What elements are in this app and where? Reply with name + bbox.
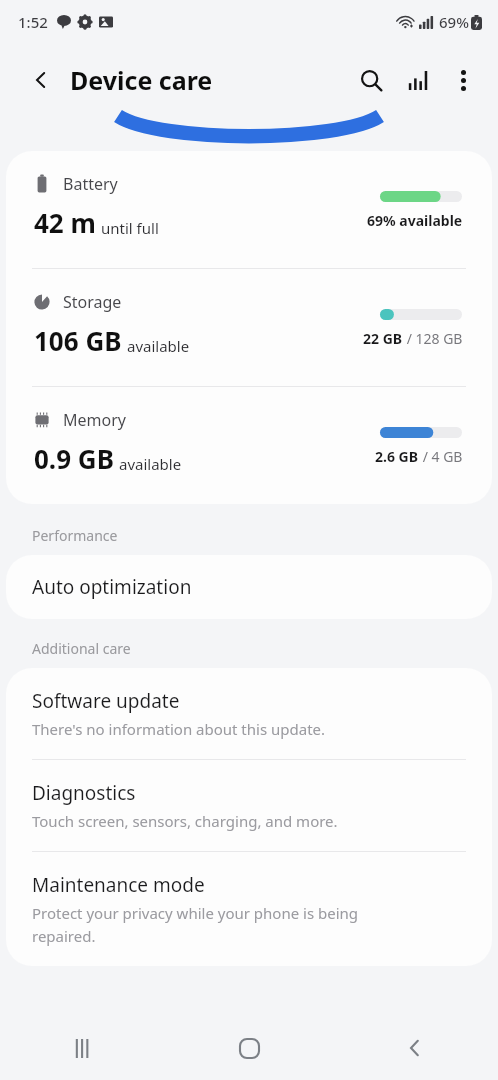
staticText: 106 GB (34, 323, 122, 358)
staticText: Diagnostics (32, 780, 136, 806)
staticText: / 4 GB (419, 447, 463, 466)
staticText: 0.9 GB (34, 441, 114, 476)
staticText: Auto optimization (32, 574, 192, 600)
staticText: Storage (63, 291, 122, 313)
button[interactable]: Software update (6, 668, 492, 759)
staticText: There's no information about this update… (32, 719, 326, 739)
button[interactable]: Home (166, 1016, 332, 1080)
button[interactable]: Storage (6, 269, 492, 386)
staticText: 1:52 (18, 12, 48, 32)
button[interactable]: More options (442, 59, 484, 101)
staticText: Performance (32, 526, 118, 545)
button[interactable]: Auto optimization (6, 555, 492, 619)
staticText: 22 GB (363, 329, 403, 348)
staticText: Memory (63, 409, 126, 431)
button[interactable]: Battery (6, 151, 492, 268)
staticText: Device care (70, 63, 213, 97)
staticText: / 128 GB (403, 329, 463, 348)
button[interactable]: Maintenance mode (6, 852, 492, 966)
button[interactable]: Back (24, 63, 58, 97)
staticText: 69% (439, 12, 469, 32)
staticText: 42 m (34, 205, 96, 240)
staticText: available (127, 336, 190, 356)
staticText: Maintenance mode (32, 872, 205, 898)
staticText: available (119, 454, 182, 474)
button[interactable]: Memory (6, 387, 492, 504)
button[interactable]: Diagnostics (6, 760, 492, 851)
staticText: Battery (63, 173, 118, 195)
staticText: Software update (32, 688, 180, 714)
staticText: Additional care (32, 639, 131, 658)
staticText: Touch screen, sensors, charging, and mor… (32, 811, 338, 831)
staticText: Protect your privacy while your phone is… (32, 903, 420, 946)
button[interactable]: Usage statistics (398, 59, 440, 101)
staticText: 2.6 GB (375, 447, 419, 466)
button[interactable]: Search (350, 59, 392, 101)
button[interactable]: Back (332, 1016, 498, 1080)
staticText: 69% available (367, 211, 463, 230)
button[interactable]: Recent apps (0, 1016, 166, 1080)
staticText: until full (101, 218, 159, 238)
